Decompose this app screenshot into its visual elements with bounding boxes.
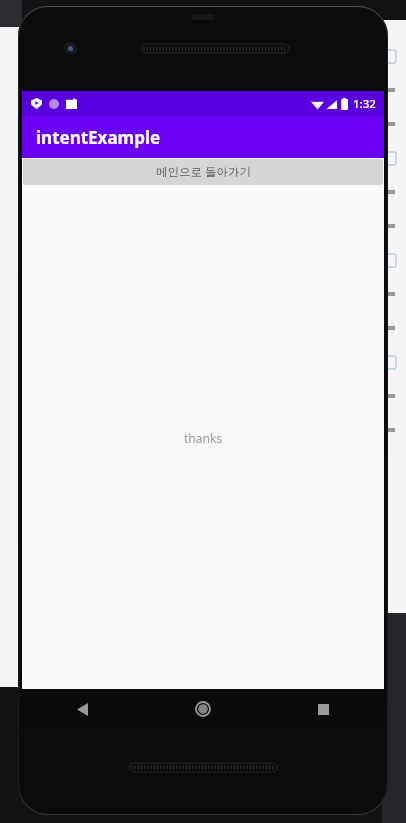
button[interactable]: Back bbox=[22, 689, 142, 729]
button[interactable]: Recent apps bbox=[263, 689, 384, 729]
staticText: thanks bbox=[184, 430, 223, 446]
staticText: 1:32 bbox=[353, 96, 376, 112]
staticText: intentExample bbox=[36, 126, 161, 149]
button[interactable]: 메인으로 돌아가기 bbox=[23, 159, 383, 185]
staticText: 메인으로 돌아가기 bbox=[156, 164, 251, 180]
button[interactable]: Home bbox=[142, 689, 263, 729]
